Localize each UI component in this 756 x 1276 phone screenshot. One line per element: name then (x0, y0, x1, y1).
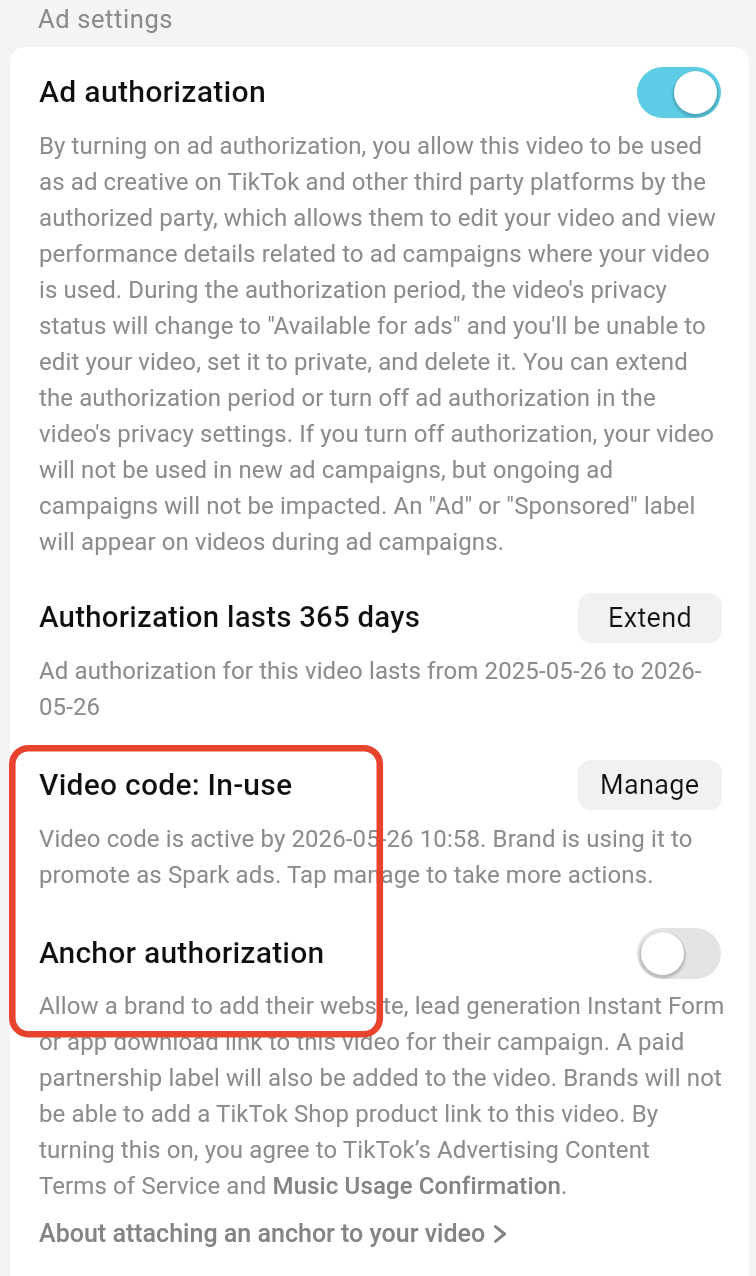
button[interactable]: About attaching an anchor to your video (39, 1219, 506, 1248)
staticText: Video code: In-use (39, 767, 293, 802)
staticText: Allow a brand to add their website, lead… (39, 986, 756, 1202)
staticText: Ad settings (38, 4, 174, 34)
button[interactable]: Anchor authorization toggle (637, 928, 721, 979)
staticText: Manage (600, 769, 700, 801)
staticText: Ad authorization (39, 74, 266, 110)
button[interactable]: Manage (578, 760, 722, 810)
staticText: About attaching an anchor to your video (39, 1219, 486, 1248)
staticText: Video code is active by 2026-05-26 10:58… (39, 819, 756, 891)
staticText: Ad authorization for this video lasts fr… (39, 651, 756, 723)
staticText: Extend (608, 602, 693, 634)
staticText: Anchor authorization (39, 935, 325, 970)
button[interactable]: Ad authorization toggle (637, 67, 721, 118)
button[interactable]: Extend (578, 593, 722, 643)
staticText: By turning on ad authorization, you allo… (39, 126, 756, 558)
staticText: Authorization lasts 365 days (39, 600, 421, 635)
